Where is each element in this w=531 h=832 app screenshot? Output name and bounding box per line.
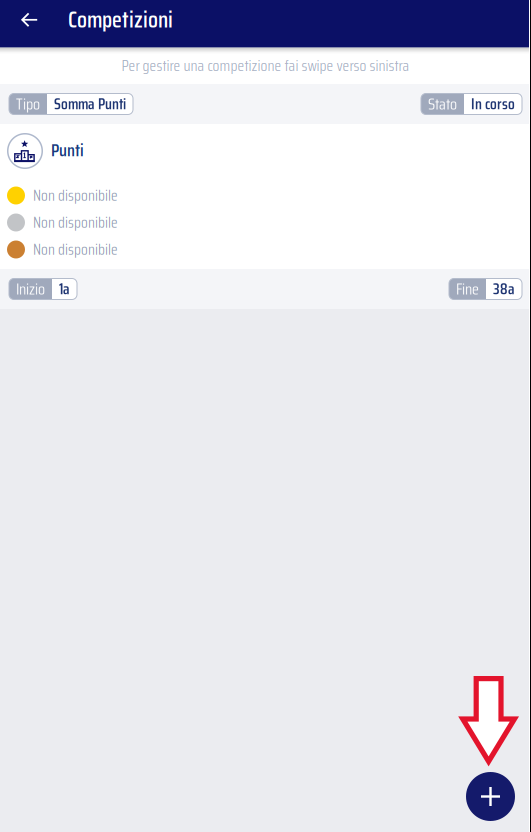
staticText: Non disponibile [33, 210, 118, 234]
staticText: 38a [493, 277, 515, 301]
staticText: Competizioni [68, 2, 173, 37]
staticText: Inizio [16, 276, 45, 302]
staticText: In corso [471, 92, 515, 116]
button[interactable]: Back [0, 0, 68, 47]
staticText: 1a [59, 277, 70, 301]
staticText: Tipo [16, 91, 40, 117]
staticText: Non disponibile [33, 183, 118, 207]
staticText: Per gestire una competizione fai swipe v… [121, 53, 409, 78]
staticText: Fine [456, 276, 479, 302]
staticText: Somma Punti [54, 92, 126, 116]
staticText: Punti [51, 136, 84, 164]
button[interactable]: Add competition [466, 772, 515, 821]
button[interactable]: Tipo [0, 84, 531, 309]
staticText: Stato [428, 91, 457, 117]
staticText: Non disponibile [33, 237, 118, 261]
